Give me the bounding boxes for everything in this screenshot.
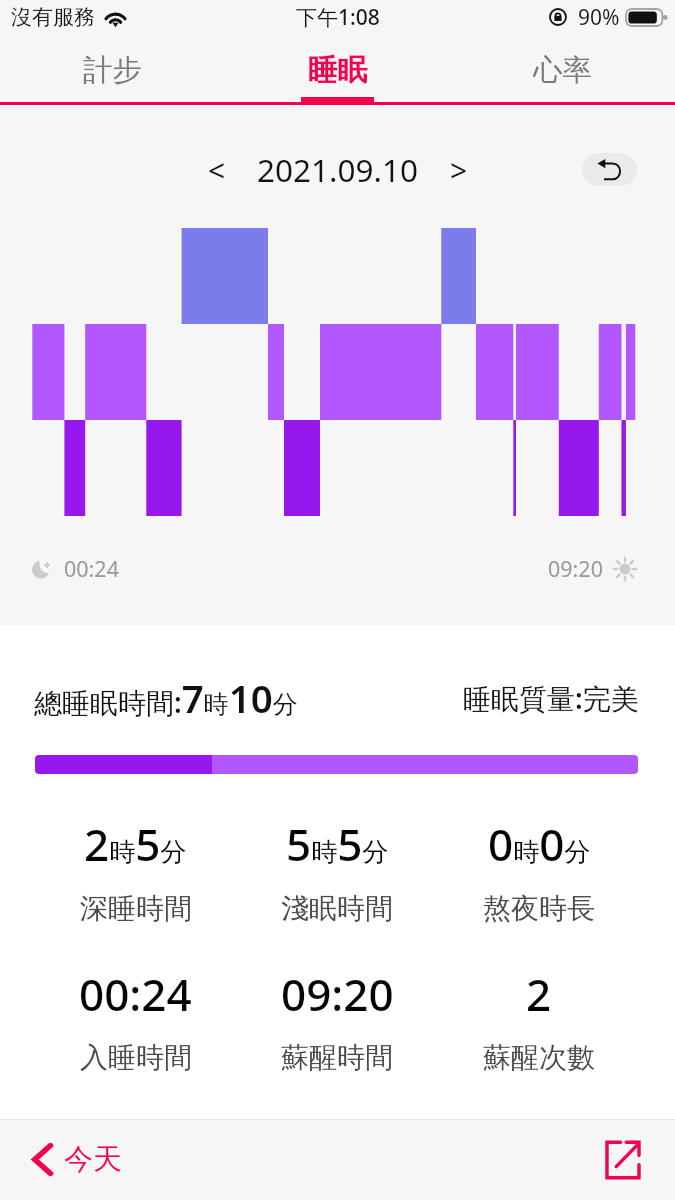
staticText: 沒有服務: [11, 4, 95, 30]
staticText: 09:20: [281, 964, 394, 1022]
staticText: 2時5分: [84, 814, 187, 872]
staticText: 0時0分: [488, 814, 591, 872]
staticText: <: [208, 150, 226, 190]
staticText: 計步: [83, 52, 142, 89]
button[interactable]: 心率: [450, 42, 675, 105]
button[interactable]: Back: [582, 153, 637, 186]
staticText: 深睡時間: [80, 891, 192, 926]
button[interactable]: 睡眠: [225, 42, 450, 105]
staticText: 睡眠質量:完美: [463, 679, 639, 717]
staticText: 入睡時間: [80, 1040, 192, 1075]
staticText: 蘇醒次數: [483, 1040, 595, 1075]
staticText: >: [450, 150, 468, 190]
button[interactable]: Share: [597, 1134, 649, 1186]
button[interactable]: 計步: [0, 42, 225, 105]
staticText: 總睡眠時間:7時10分: [34, 672, 298, 724]
staticText: 睡眠: [308, 52, 367, 89]
staticText: 00:24: [64, 554, 119, 583]
staticText: 熬夜時長: [483, 891, 595, 926]
staticText: 00:24: [79, 964, 192, 1022]
staticText: 心率: [533, 52, 592, 89]
staticText: 5時5分: [286, 814, 389, 872]
staticText: 2021.09.10: [257, 148, 419, 191]
button[interactable]: 今天: [24, 1131, 130, 1188]
button[interactable]: Next day: [439, 150, 479, 190]
staticText: 2: [526, 964, 552, 1022]
staticText: 蘇醒時間: [281, 1040, 393, 1075]
staticText: 下午1:08: [296, 3, 380, 32]
staticText: 今天: [64, 1141, 122, 1178]
button[interactable]: Previous day: [197, 150, 237, 190]
staticText: 淺眠時間: [281, 891, 393, 926]
staticText: 90%: [578, 3, 620, 32]
staticText: 09:20: [548, 554, 603, 583]
